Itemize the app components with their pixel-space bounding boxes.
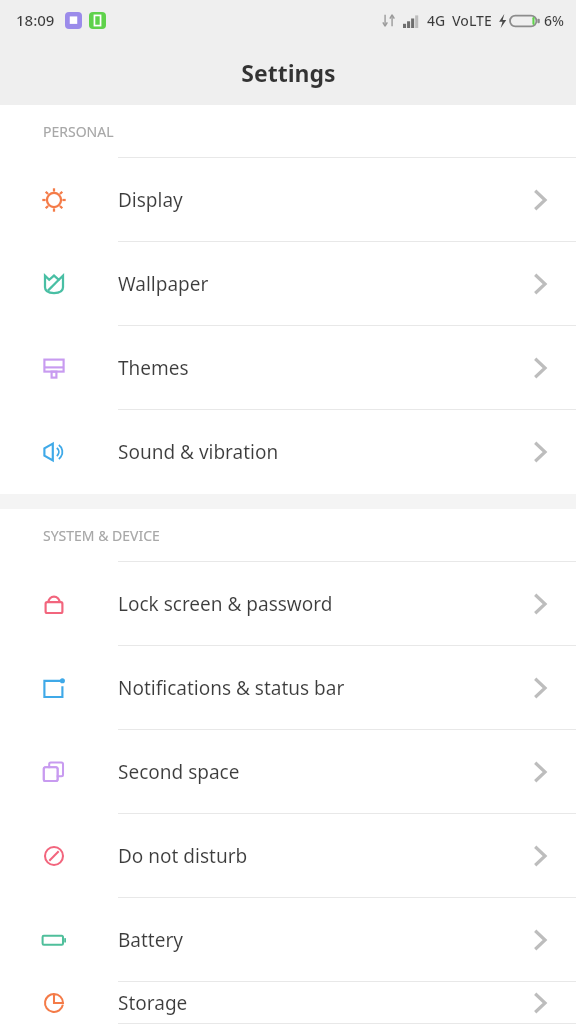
button[interactable]: Sound & vibration [0, 410, 576, 494]
staticText: Do not disturb [118, 843, 248, 869]
staticText: Storage [118, 990, 188, 1016]
staticText: Second space [118, 759, 240, 785]
staticText: 4G [427, 11, 446, 30]
button[interactable]: Themes [0, 326, 576, 410]
staticText: Lock screen & password [118, 591, 333, 617]
button[interactable]: Display [0, 158, 576, 242]
button[interactable]: Notifications & status bar [0, 646, 576, 730]
staticText: 6% [544, 11, 564, 30]
staticText: PERSONAL [43, 122, 114, 141]
button[interactable]: Lock screen & password [0, 562, 576, 646]
staticText: 18:09 [16, 10, 55, 30]
button[interactable]: Second space [0, 730, 576, 814]
staticText: Display [118, 187, 183, 213]
staticText: Wallpaper [118, 271, 209, 297]
button[interactable]: Do not disturb [0, 814, 576, 898]
staticText: Settings [241, 57, 336, 88]
staticText: Notifications & status bar [118, 675, 345, 701]
staticText: Themes [118, 355, 189, 381]
staticText: Battery [118, 927, 183, 953]
button[interactable]: Storage [0, 982, 576, 1024]
staticText: VoLTE [452, 11, 492, 30]
button[interactable]: Wallpaper [0, 242, 576, 326]
staticText: SYSTEM & DEVICE [43, 526, 160, 545]
staticText: Sound & vibration [118, 439, 279, 465]
button[interactable]: Battery [0, 898, 576, 982]
